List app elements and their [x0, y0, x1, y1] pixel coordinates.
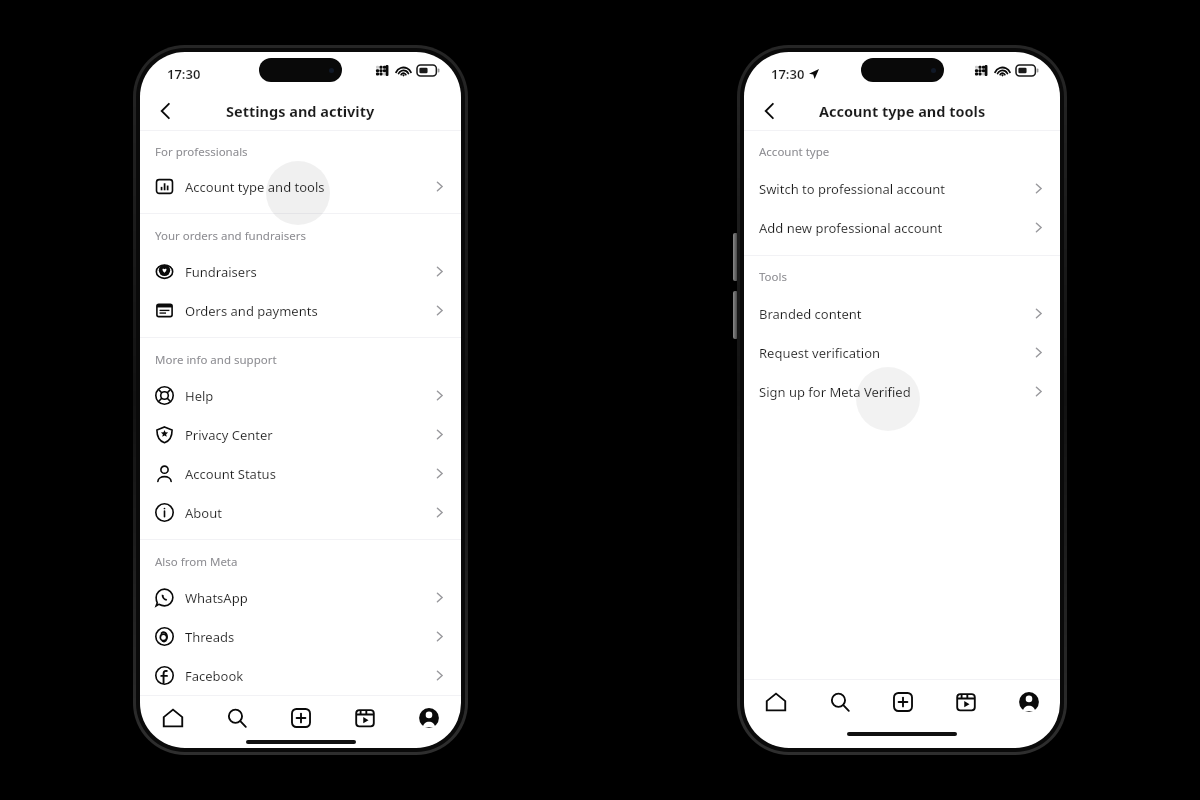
- staticText: More info and support: [155, 352, 277, 368]
- staticText: Branded content: [759, 305, 862, 323]
- button[interactable]: Reels: [333, 696, 397, 740]
- staticText: Help: [185, 387, 214, 405]
- button[interactable]: WhatsApp: [140, 578, 461, 617]
- button[interactable]: Back: [148, 93, 184, 129]
- staticText: Threads: [185, 628, 235, 646]
- button[interactable]: Request verification: [744, 333, 1060, 372]
- button[interactable]: Account type and tools: [140, 167, 461, 206]
- button[interactable]: Facebook: [140, 656, 461, 695]
- staticText: Sign up for Meta Verified: [759, 383, 911, 401]
- staticText: For professionals: [155, 144, 248, 160]
- staticText: Account type and tools: [185, 178, 325, 196]
- button[interactable]: Threads: [140, 617, 461, 656]
- staticText: Add new professional account: [759, 219, 943, 237]
- button[interactable]: Reels: [934, 680, 997, 724]
- button[interactable]: Branded content: [744, 294, 1060, 333]
- button[interactable]: Create: [269, 696, 333, 740]
- staticText: 17:30: [167, 65, 201, 83]
- button[interactable]: Search: [808, 680, 871, 724]
- staticText: About: [185, 504, 222, 522]
- button[interactable]: Sign up for Meta Verified: [744, 372, 1060, 411]
- button[interactable]: Profile: [997, 680, 1060, 724]
- button[interactable]: Home: [744, 680, 808, 724]
- staticText: Account type: [759, 144, 830, 160]
- button[interactable]: Orders and payments: [140, 291, 461, 330]
- button[interactable]: Account Status: [140, 454, 461, 493]
- button[interactable]: About: [140, 493, 461, 532]
- staticText: Facebook: [185, 667, 244, 685]
- button[interactable]: Home: [140, 696, 205, 740]
- button[interactable]: Create: [871, 680, 934, 724]
- staticText: Orders and payments: [185, 302, 318, 320]
- staticText: Privacy Center: [185, 426, 273, 444]
- staticText: Account Status: [185, 465, 276, 483]
- staticText: Switch to professional account: [759, 180, 945, 198]
- staticText: Also from Meta: [155, 554, 238, 570]
- button[interactable]: Fundraisers: [140, 252, 461, 291]
- staticText: WhatsApp: [185, 589, 248, 607]
- button[interactable]: Privacy Center: [140, 415, 461, 454]
- button[interactable]: Add new professional account: [744, 208, 1060, 247]
- button[interactable]: Profile: [397, 696, 461, 740]
- staticText: Your orders and fundraisers: [155, 228, 307, 244]
- staticText: Fundraisers: [185, 263, 257, 281]
- button[interactable]: Help: [140, 376, 461, 415]
- staticText: Settings and activity: [226, 101, 375, 121]
- staticText: 17:30: [771, 65, 805, 83]
- button[interactable]: Switch to professional account: [744, 169, 1060, 208]
- staticText: Request verification: [759, 344, 881, 362]
- button[interactable]: Back: [752, 93, 788, 129]
- staticText: Account type and tools: [819, 101, 986, 121]
- button[interactable]: Search: [205, 696, 269, 740]
- staticText: Tools: [759, 269, 787, 285]
